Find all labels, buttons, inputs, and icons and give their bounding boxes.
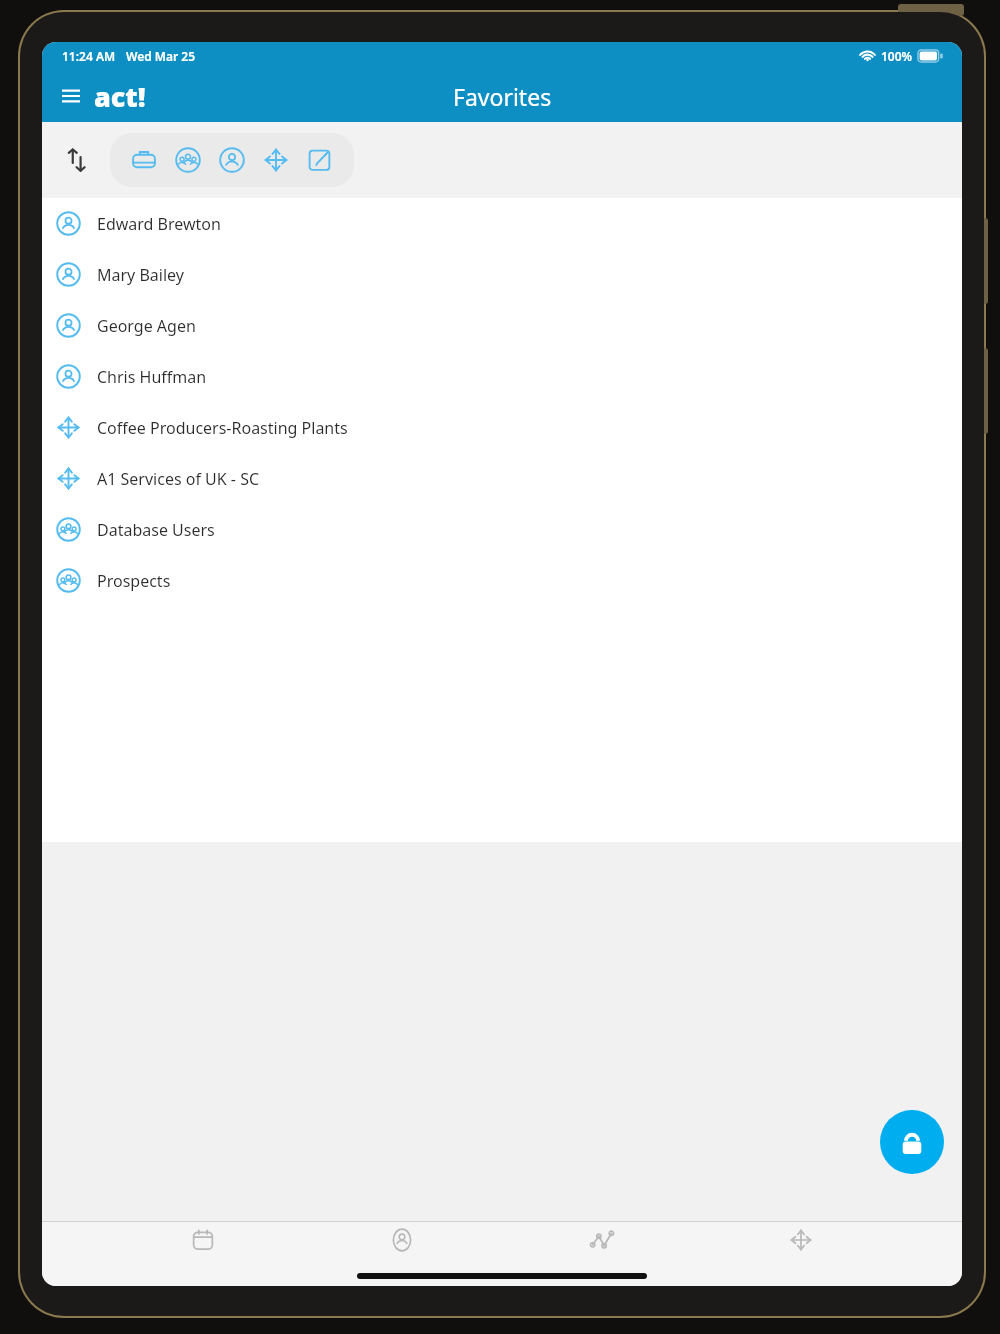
button[interactable]: Database Users (42, 504, 962, 555)
staticText: 11:24 AM (62, 48, 116, 64)
staticText: Chris Huffman (97, 366, 207, 388)
button[interactable]: Contacts (363, 1226, 441, 1274)
button[interactable]: Menu (56, 85, 86, 107)
button[interactable]: Opportunities (254, 138, 298, 182)
staticText: Coffee Producers-Roasting Plants (97, 417, 348, 439)
staticText: Prospects (97, 570, 171, 592)
staticText: Edward Brewton (97, 213, 221, 235)
button[interactable]: Companies (122, 138, 166, 182)
button[interactable]: Opportunities (563, 1226, 641, 1274)
button[interactable]: Chris Huffman (42, 351, 962, 402)
staticText: Mary Bailey (97, 264, 184, 286)
button[interactable]: Mary Bailey (42, 249, 962, 300)
button[interactable]: Groups (762, 1226, 840, 1274)
button[interactable]: A1 Services of UK - SC (42, 453, 962, 504)
staticText: act! (94, 78, 146, 115)
staticText: Database Users (97, 519, 215, 541)
button[interactable]: Contacts (210, 138, 254, 182)
staticText: George Agen (97, 315, 196, 337)
staticText: Wed Mar 25 (126, 48, 196, 64)
button[interactable]: Sort (54, 138, 98, 182)
staticText: Favorites (453, 81, 552, 112)
button[interactable]: Unlock (880, 1110, 944, 1174)
button[interactable]: Coffee Producers-Roasting Plants (42, 402, 962, 453)
button[interactable]: Prospects (42, 555, 962, 606)
button[interactable]: Calendar (164, 1226, 242, 1274)
button[interactable]: Edit (298, 138, 342, 182)
button[interactable]: George Agen (42, 300, 962, 351)
button[interactable]: Edward Brewton (42, 198, 962, 249)
staticText: A1 Services of UK - SC (97, 468, 260, 490)
button[interactable]: Groups (166, 138, 210, 182)
staticText: 100% (881, 48, 913, 64)
